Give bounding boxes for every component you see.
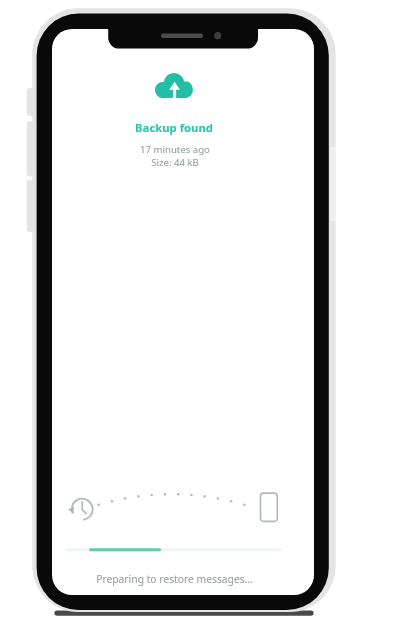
other: Cloud backup xyxy=(155,73,193,98)
staticText: Preparing to restore messages… xyxy=(96,572,253,586)
staticText: 17 minutes ago xyxy=(140,143,210,156)
staticText: Backup found xyxy=(135,120,213,135)
staticText: Size: 44 kB xyxy=(151,156,199,169)
